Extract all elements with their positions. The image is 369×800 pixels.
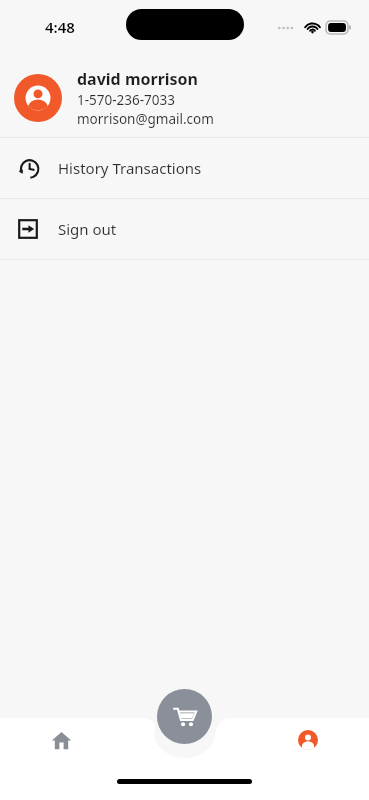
button[interactable]: Profile (246, 718, 369, 762)
staticText: morrison@gmail.com (77, 110, 214, 128)
button[interactable]: Home (0, 718, 123, 762)
staticText: History Transactions (58, 158, 202, 178)
staticText: 1-570-236-7033 (77, 91, 175, 109)
button[interactable]: Cart (157, 689, 212, 744)
button[interactable]: Sign out (0, 199, 369, 259)
button[interactable]: History Transactions (0, 138, 369, 198)
staticText: 4:48 (45, 17, 75, 37)
staticText: david morrison (77, 68, 199, 90)
button[interactable]: david morrison (0, 58, 369, 137)
staticText: Sign out (58, 219, 117, 239)
